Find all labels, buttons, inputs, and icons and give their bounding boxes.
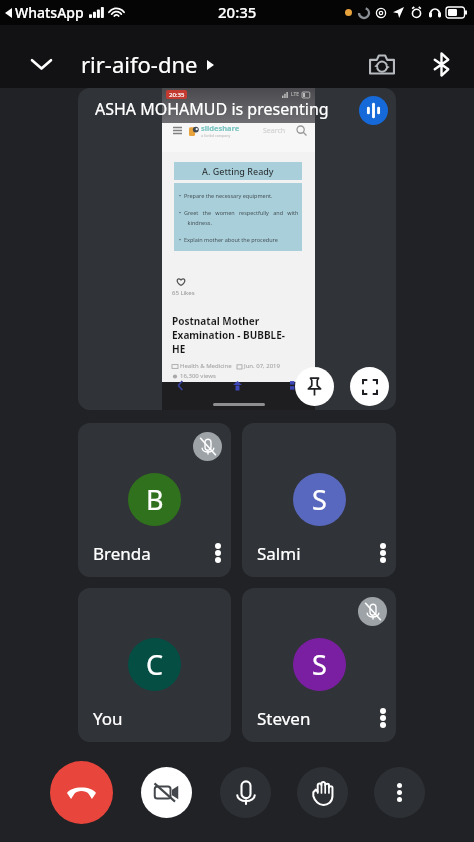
staticText: Search — [263, 126, 286, 136]
button[interactable]: 20:35 — [78, 88, 396, 410]
staticText: S — [312, 481, 327, 518]
staticText: 20:35 — [218, 2, 257, 22]
staticText: B — [146, 481, 164, 518]
staticText: 65 Likes — [172, 289, 195, 297]
button[interactable]: Speaking — [359, 96, 388, 125]
button[interactable]: S — [242, 588, 396, 742]
button[interactable]: Turn off camera — [141, 767, 192, 818]
button[interactable]: More options — [368, 703, 396, 733]
staticText: 16,300 views — [180, 372, 216, 380]
staticText: ASHA MOHAMUD is presenting — [95, 98, 329, 120]
staticText: 20:35 — [169, 91, 185, 99]
button[interactable]: More options — [368, 538, 396, 568]
button[interactable]: B — [78, 423, 231, 577]
button[interactable]: Switch camera — [362, 44, 402, 84]
staticText: Jun. 07, 2019 — [244, 362, 280, 370]
staticText: You — [93, 707, 123, 730]
staticText: WhatsApp — [15, 3, 84, 22]
staticText: Postnatal Mother Examination - BUBBLE- H… — [172, 314, 285, 356]
staticText: • Prepare the necessary equipment. — [179, 192, 273, 199]
other: Muted — [193, 432, 222, 461]
staticText: Steven — [257, 707, 311, 730]
button[interactable]: Raise hand — [297, 767, 348, 818]
staticText: C — [146, 646, 164, 683]
staticText: Brenda — [93, 542, 151, 565]
staticText: LTE — [291, 91, 300, 98]
button[interactable]: More options — [203, 538, 231, 568]
staticText: slideshare — [201, 123, 240, 133]
button[interactable]: Pin — [295, 367, 334, 406]
button[interactable]: Full screen — [350, 367, 389, 406]
button[interactable]: More options — [374, 767, 425, 818]
button[interactable]: Bluetooth — [421, 44, 461, 84]
staticText: rir-aifo-dne — [81, 49, 198, 79]
staticText: S — [312, 646, 327, 683]
button[interactable]: Mute microphone — [220, 767, 271, 818]
staticText: A. Getting Ready — [202, 165, 274, 177]
staticText: • Greet the women respectfully and with … — [179, 209, 298, 226]
button[interactable]: C — [78, 588, 231, 742]
staticText: a Scribd company — [201, 133, 231, 138]
staticText: Health & Medicine — [180, 362, 232, 370]
other: Muted — [358, 597, 387, 626]
staticText: Salmi — [257, 542, 301, 565]
staticText: • Explain mother about the procedure — [179, 236, 278, 243]
button[interactable]: Collapse — [21, 44, 61, 84]
button[interactable]: End call — [50, 761, 113, 824]
button[interactable]: S — [242, 423, 396, 577]
